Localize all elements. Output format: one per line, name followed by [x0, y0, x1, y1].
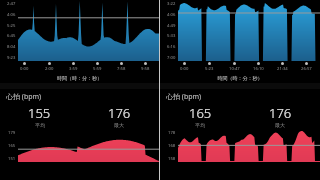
button[interactable]: 165 — [160, 104, 240, 128]
staticText: 時間（時：分：秒） — [160, 75, 320, 81]
staticText: 心拍 (bpm) — [6, 92, 42, 102]
other: Activity comparison charts — [0, 0, 320, 180]
staticText: 9:23 — [7, 55, 16, 61]
staticText: 4:06 — [167, 12, 176, 18]
staticText: 心拍 (bpm) — [166, 92, 202, 102]
staticText: 2:00 — [45, 66, 54, 72]
staticText: 平均 — [35, 122, 45, 128]
staticText: 7:58 — [117, 66, 126, 72]
button[interactable]: 155 — [0, 104, 79, 128]
button[interactable]: 2:47 — [0, 0, 159, 180]
staticText: 最大 — [114, 122, 124, 128]
staticText: 5:33 — [167, 33, 176, 39]
button[interactable]: 176 — [240, 104, 320, 128]
staticText: 0:00 — [180, 66, 189, 72]
staticText: 2:47 — [7, 1, 16, 7]
staticText: 8:04 — [7, 44, 16, 50]
staticText: 176 — [108, 104, 131, 122]
staticText: 9:58 — [141, 66, 150, 72]
staticText: 178 — [168, 130, 176, 136]
staticText: 最大 — [275, 122, 285, 128]
staticText: 165 — [8, 143, 16, 149]
staticText: 179 — [8, 130, 16, 136]
staticText: 16:10 — [253, 66, 264, 72]
button[interactable]: 176 — [79, 104, 159, 128]
staticText: 4:49 — [167, 23, 176, 29]
staticText: 0:00 — [20, 66, 29, 72]
staticText: 176 — [269, 104, 292, 122]
staticText: 4:06 — [7, 12, 16, 18]
staticText: 158 — [168, 156, 176, 162]
staticText: 3:59 — [69, 66, 78, 72]
staticText: 6:45 — [7, 33, 16, 39]
staticText: 10:47 — [229, 66, 240, 72]
staticText: 平均 — [195, 122, 205, 128]
staticText: 7:00 — [167, 55, 176, 61]
staticText: 5:59 — [93, 66, 102, 72]
staticText: 5:25 — [7, 23, 16, 29]
staticText: 21:34 — [277, 66, 288, 72]
staticText: 26:57 — [301, 66, 312, 72]
button[interactable]: 3:22 — [160, 0, 320, 180]
staticText: 5:23 — [205, 66, 214, 72]
staticText: 165 — [189, 104, 212, 122]
staticText: 時間（時：分：秒） — [0, 75, 159, 81]
staticText: 168 — [168, 143, 176, 149]
staticText: 151 — [8, 156, 16, 162]
staticText: 155 — [28, 104, 51, 122]
staticText: 6:16 — [167, 44, 176, 50]
staticText: 3:22 — [167, 1, 176, 7]
